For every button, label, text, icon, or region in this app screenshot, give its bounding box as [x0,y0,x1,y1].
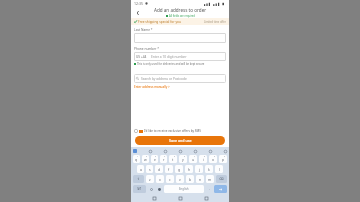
button[interactable]: q [133,155,140,163]
button[interactable]: Backspace [216,175,227,183]
staticText: Phone number * [134,47,160,51]
staticText: n [199,177,202,182]
staticText: x [159,177,161,182]
button[interactable]: Shift [133,175,144,183]
staticText: Enter a 10 digit number [151,55,187,59]
button[interactable]: s [146,165,153,173]
button[interactable]: Toolbar action 2 [178,149,182,153]
staticText: All fields are required [169,14,195,18]
button[interactable]: e [151,155,158,163]
staticText: f [168,167,170,172]
button[interactable]: Free shipping special for you [134,18,226,25]
button[interactable]: Toolbar action 1 [163,149,167,153]
button[interactable]: c [166,175,174,183]
button[interactable]: g [175,165,183,173]
button[interactable]: r [160,155,167,163]
staticText: 3 [155,155,157,158]
staticText: u [192,157,195,162]
button[interactable]: Toolbar action 5 [223,149,227,153]
button[interactable]: b [186,175,194,183]
button[interactable]: l [215,165,223,173]
button[interactable]: w [142,155,149,163]
button[interactable]: Emoji [155,184,163,194]
staticText: 9 [214,155,216,158]
button[interactable]: d [155,165,163,173]
button[interactable]: Search by address or Postcode [134,74,226,83]
button[interactable]: Back [203,195,209,201]
staticText: This is only used for deliveries and wil… [137,62,205,66]
staticText: 5 [174,155,176,158]
button[interactable]: Home [177,195,183,201]
staticText: ⌫ [219,177,224,181]
staticText: p [222,157,225,162]
button[interactable]: j [195,165,203,173]
button[interactable]: o [209,155,217,163]
button[interactable]: u [189,155,197,163]
staticText: l [219,167,220,172]
staticText: w [144,157,147,162]
staticText: d [158,167,161,172]
staticText: v [179,177,181,182]
staticText: 7 [194,155,196,158]
button[interactable]: y [179,155,187,163]
staticText: c [169,177,171,182]
staticText: g [178,167,181,172]
staticText: 4 [164,155,166,158]
button[interactable]: Symbols [133,185,146,193]
button[interactable] [134,33,226,43]
staticText: Save and use [169,138,192,143]
staticText: . [209,187,210,191]
staticText: Enter address manually > [134,85,170,89]
button[interactable]: Toolbar action 3 [193,149,197,153]
button[interactable]: x [156,175,164,183]
staticText: ⇧ [137,177,140,181]
staticText: 1 [137,155,139,158]
button[interactable]: Save and use [135,136,225,145]
button[interactable]: Toolbar action 4 [208,149,212,153]
button[interactable]: h [185,165,193,173]
button[interactable]: Recents [151,195,157,201]
staticText: 6 [184,155,186,158]
staticText: e [154,157,156,162]
staticText: a [140,167,142,172]
staticText: b [189,177,192,182]
staticText: 12:35 [134,1,143,6]
staticText: !#1 [137,187,142,191]
staticText: i [203,157,204,162]
button[interactable]: i [199,155,207,163]
staticText: Last Name * [134,28,153,32]
button[interactable]: Enter [214,185,227,193]
staticText: r [163,157,165,162]
staticText: q [135,157,138,162]
button[interactable]: n [196,175,204,183]
staticText: Limited time offer [204,20,226,24]
staticText: h [188,167,191,172]
button[interactable]: p [219,155,227,163]
staticText: j [199,167,200,172]
staticText: y [182,157,184,162]
button[interactable]: Enter address manually > [134,85,170,89]
staticText: I'd like to receive exclusive offers by … [144,129,201,133]
staticText: k [208,167,210,172]
staticText: Free shipping special for you [138,20,181,24]
button[interactable]: Settings [147,184,155,194]
button[interactable]: z [146,175,154,183]
staticText: 0 [224,155,226,158]
staticText: Search by address or Postcode [141,77,187,81]
staticText: 8 [204,155,206,158]
button[interactable]: Back [134,9,141,16]
button[interactable]: t [169,155,177,163]
staticText: English [179,187,189,191]
button[interactable]: k [205,165,213,173]
button[interactable]: I'd like to receive exclusive offers by … [134,129,226,133]
button[interactable]: English [164,185,204,193]
button[interactable]: Keyboard layout [133,149,137,153]
staticText: t [172,157,174,162]
button[interactable]: a [137,165,144,173]
button[interactable]: m [206,175,214,183]
button[interactable]: Toolbar action 0 [148,149,152,153]
button[interactable]: US +44 [134,52,226,61]
button[interactable]: f [165,165,173,173]
button[interactable]: v [176,175,184,183]
